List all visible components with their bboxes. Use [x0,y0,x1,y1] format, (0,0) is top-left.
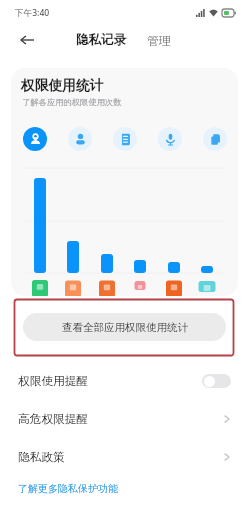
button[interactable]: 返回 [13,26,41,54]
staticText: 高危权限提醒 [18,412,89,427]
button[interactable]: 高危权限提醒 [0,400,250,438]
staticText: 权限使用统计 [21,77,104,94]
staticText: 了解各应用的权限使用次数 [22,97,122,107]
staticText: 权限使用提醒 [18,374,89,389]
staticText: 了解更多隐私保护功能 [18,482,118,495]
button[interactable]: 通讯录 [113,127,137,151]
staticText: 查看全部应用权限使用统计 [62,321,188,334]
staticText: 隐私记录 [76,32,126,48]
button[interactable]: 隐私记录 [70,26,132,54]
button[interactable]: 查看全部应用权限使用统计 [23,313,226,341]
staticText: 隐私政策 [18,450,65,465]
staticText: 管理 [147,33,171,48]
button[interactable]: 权限使用提醒 [0,362,250,400]
staticText: 下午3:40 [15,7,50,19]
button[interactable]: 身体传感器 [68,127,92,151]
button[interactable]: 隐私政策 [0,438,250,476]
button[interactable]: 麦克风 [158,127,182,151]
button[interactable]: 了解更多隐私保护功能 [18,482,118,495]
button[interactable]: 管理 [140,26,178,54]
button[interactable]: 文件 [203,127,227,151]
button[interactable]: 位置 [23,127,47,151]
